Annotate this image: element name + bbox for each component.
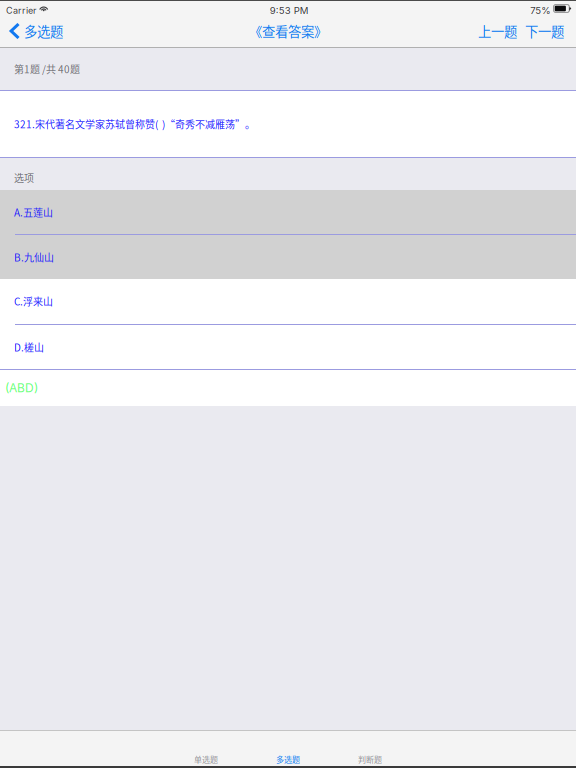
staticText: 《查看答案》 [249, 21, 327, 41]
staticText: C.浮来山 [14, 294, 53, 308]
button[interactable]: 下一题 [521, 20, 576, 42]
button[interactable]: 判断题 [329, 731, 411, 766]
staticText: 多选题 [24, 21, 63, 41]
staticText: B.九仙山 [14, 250, 54, 264]
staticText: 单选题 [194, 753, 218, 765]
staticText: D.槎山 [14, 340, 44, 354]
button[interactable]: B.九仙山 [0, 235, 576, 279]
button[interactable]: 上一题 [470, 20, 521, 42]
button[interactable]: D.槎山 [0, 325, 576, 369]
button[interactable]: C.浮来山 [0, 279, 576, 325]
staticText: Carrier [6, 5, 36, 16]
button[interactable]: A.五莲山 [0, 190, 576, 235]
staticText: 9:53 PM [270, 5, 309, 16]
staticText: 75% [530, 5, 550, 16]
staticText: 选项 [14, 170, 34, 185]
button[interactable]: 多选题 [247, 731, 329, 766]
staticText: 多选题 [276, 753, 300, 765]
staticText: 判断题 [358, 753, 382, 765]
staticText: 上一题 [478, 21, 517, 41]
button[interactable]: 单选题 [165, 731, 247, 766]
button[interactable]: 《查看答案》 [239, 20, 337, 42]
staticText: 第1题 /共 40题 [14, 62, 80, 76]
staticText: 下一题 [525, 21, 564, 41]
staticText: (ABD) [5, 381, 38, 395]
button[interactable]: 多选题 [0, 20, 71, 42]
staticText: 321.宋代著名文学家苏轼曾称赞( )“奇秀不减雁荡”。 [14, 117, 255, 131]
staticText: A.五莲山 [14, 205, 53, 219]
